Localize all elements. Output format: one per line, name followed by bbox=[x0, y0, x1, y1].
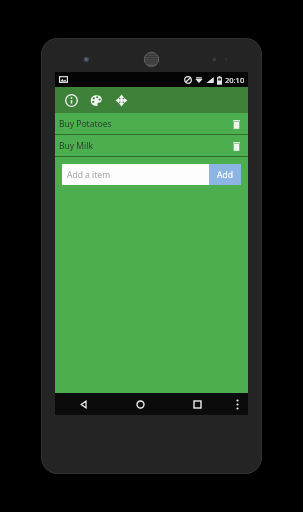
button[interactable]: Delete Buy Potatoes bbox=[228, 116, 244, 132]
button[interactable]: Delete Buy Milk bbox=[228, 138, 244, 154]
button[interactable]: Add a item bbox=[62, 164, 209, 185]
button[interactable]: Home bbox=[112, 393, 169, 415]
staticText: Add a item bbox=[67, 169, 111, 181]
button[interactable]: Back bbox=[55, 393, 112, 415]
button[interactable]: About bbox=[60, 89, 82, 111]
button[interactable]: Add bbox=[209, 164, 241, 185]
staticText: Buy Milk bbox=[59, 140, 228, 152]
button[interactable]: Change theme bbox=[85, 89, 107, 111]
button[interactable]: Recent apps bbox=[169, 393, 226, 415]
button[interactable]: Buy Potatoes bbox=[55, 113, 248, 134]
staticText: Buy Potatoes bbox=[59, 118, 228, 130]
staticText: Add bbox=[217, 169, 233, 181]
button[interactable]: Reorder items bbox=[110, 89, 132, 111]
button[interactable]: Buy Milk bbox=[55, 135, 248, 156]
button[interactable]: More options bbox=[226, 393, 248, 415]
staticText: 20:10 bbox=[225, 75, 245, 85]
